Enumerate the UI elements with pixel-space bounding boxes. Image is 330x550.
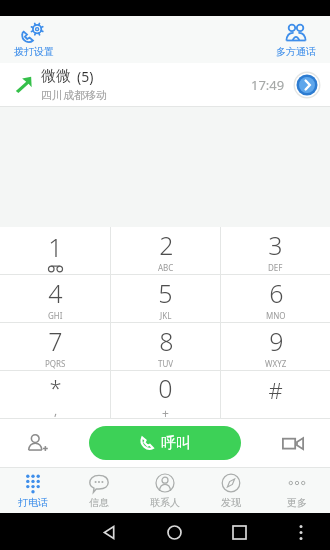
button[interactable]: 多方通话	[268, 19, 324, 61]
button[interactable]: Call details	[293, 71, 321, 99]
staticText: 拨打设置	[14, 45, 54, 58]
staticText: 发现	[221, 496, 241, 509]
staticText: 6	[269, 276, 284, 310]
staticText: 0	[158, 371, 173, 405]
button[interactable]: Add contact	[20, 426, 54, 460]
staticText: 更多	[287, 496, 307, 509]
staticText: ABC	[158, 262, 174, 273]
button[interactable]: Video call	[276, 426, 310, 460]
staticText: 联系人	[150, 496, 180, 509]
staticText: 8	[159, 324, 174, 358]
staticText: MNO	[266, 310, 286, 321]
button[interactable]: 6	[221, 275, 330, 322]
button[interactable]: 4	[0, 275, 110, 322]
staticText: 17:49	[251, 76, 285, 94]
staticText: 信息	[89, 496, 109, 509]
button[interactable]: Recents	[207, 515, 272, 549]
button[interactable]: 9	[221, 323, 330, 370]
staticText: (5)	[77, 67, 94, 86]
staticText: 7	[48, 324, 63, 358]
staticText: JKL	[160, 310, 172, 321]
staticText: DEF	[268, 262, 283, 273]
button[interactable]: 0	[111, 371, 220, 418]
button[interactable]: 3	[221, 227, 330, 274]
button[interactable]: 联系人	[132, 468, 198, 513]
button[interactable]: Back	[77, 515, 142, 549]
staticText: +	[162, 405, 169, 418]
button[interactable]: 8	[111, 323, 220, 370]
staticText: *	[49, 372, 62, 402]
staticText: #	[268, 375, 283, 405]
button[interactable]: Home	[142, 515, 207, 549]
staticText: TUV	[158, 358, 174, 369]
button[interactable]: 2	[111, 227, 220, 274]
staticText: 9	[269, 324, 284, 358]
button[interactable]: 微微	[0, 63, 330, 106]
button[interactable]: *	[0, 371, 110, 418]
button[interactable]: 拨打设置	[6, 19, 62, 61]
button[interactable]: 5	[111, 275, 220, 322]
button[interactable]: 打电话	[0, 468, 66, 513]
staticText: 微微	[41, 67, 71, 86]
staticText: 呼叫	[161, 434, 191, 453]
staticText: PQRS	[45, 358, 66, 369]
staticText: 4	[48, 276, 63, 310]
staticText: ,	[54, 402, 58, 418]
button[interactable]: 7	[0, 323, 110, 370]
staticText: 多方通话	[276, 45, 316, 58]
button[interactable]: #	[221, 371, 330, 418]
button[interactable]: 1	[0, 227, 110, 274]
button[interactable]: 呼叫	[89, 426, 241, 460]
staticText: 四川成都移动	[41, 88, 107, 102]
staticText: 1	[48, 230, 63, 264]
staticText: GHI	[48, 310, 63, 321]
staticText: 打电话	[18, 496, 48, 509]
button[interactable]: Menu	[272, 515, 330, 549]
staticText: 5	[158, 276, 173, 310]
staticText: 2	[159, 228, 174, 262]
button[interactable]: 信息	[66, 468, 132, 513]
button[interactable]: 发现	[198, 468, 264, 513]
staticText: WXYZ	[265, 358, 287, 369]
button[interactable]: 更多	[264, 468, 330, 513]
staticText: 3	[268, 228, 283, 262]
